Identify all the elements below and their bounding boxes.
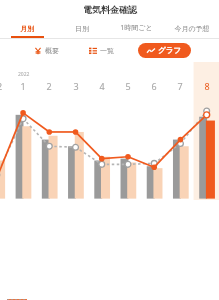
staticText: 5 bbox=[119, 80, 137, 92]
staticText: 今月の予想 bbox=[174, 24, 210, 33]
staticText: グラフ bbox=[158, 46, 182, 55]
button[interactable]: 一覧 bbox=[83, 43, 120, 58]
staticText: 2 bbox=[40, 80, 58, 92]
staticText: 2022 bbox=[18, 71, 30, 78]
staticText: 3 bbox=[67, 80, 85, 92]
staticText: 概要 bbox=[45, 46, 59, 55]
staticText: 1 bbox=[14, 80, 32, 92]
staticText: 8 bbox=[198, 80, 216, 92]
staticText: 12 bbox=[0, 80, 6, 92]
staticText: 6 bbox=[145, 80, 163, 92]
button[interactable]: グラフ bbox=[138, 43, 191, 58]
staticText: 月別 bbox=[20, 24, 34, 33]
staticText: 一覧 bbox=[100, 46, 114, 55]
staticText: 1時間ごと bbox=[120, 23, 153, 33]
staticText: 7 bbox=[171, 80, 189, 92]
button[interactable]: 概要 bbox=[28, 43, 65, 58]
staticText: 電気料金確認 bbox=[83, 4, 137, 15]
button[interactable]: 今月の予想 bbox=[164, 18, 219, 38]
staticText: 4 bbox=[93, 80, 111, 92]
staticText: 日別 bbox=[75, 24, 89, 33]
button[interactable]: 月別 bbox=[0, 18, 54, 38]
button[interactable]: 日別 bbox=[54, 18, 109, 38]
button[interactable]: 1時間ごと bbox=[109, 18, 164, 38]
